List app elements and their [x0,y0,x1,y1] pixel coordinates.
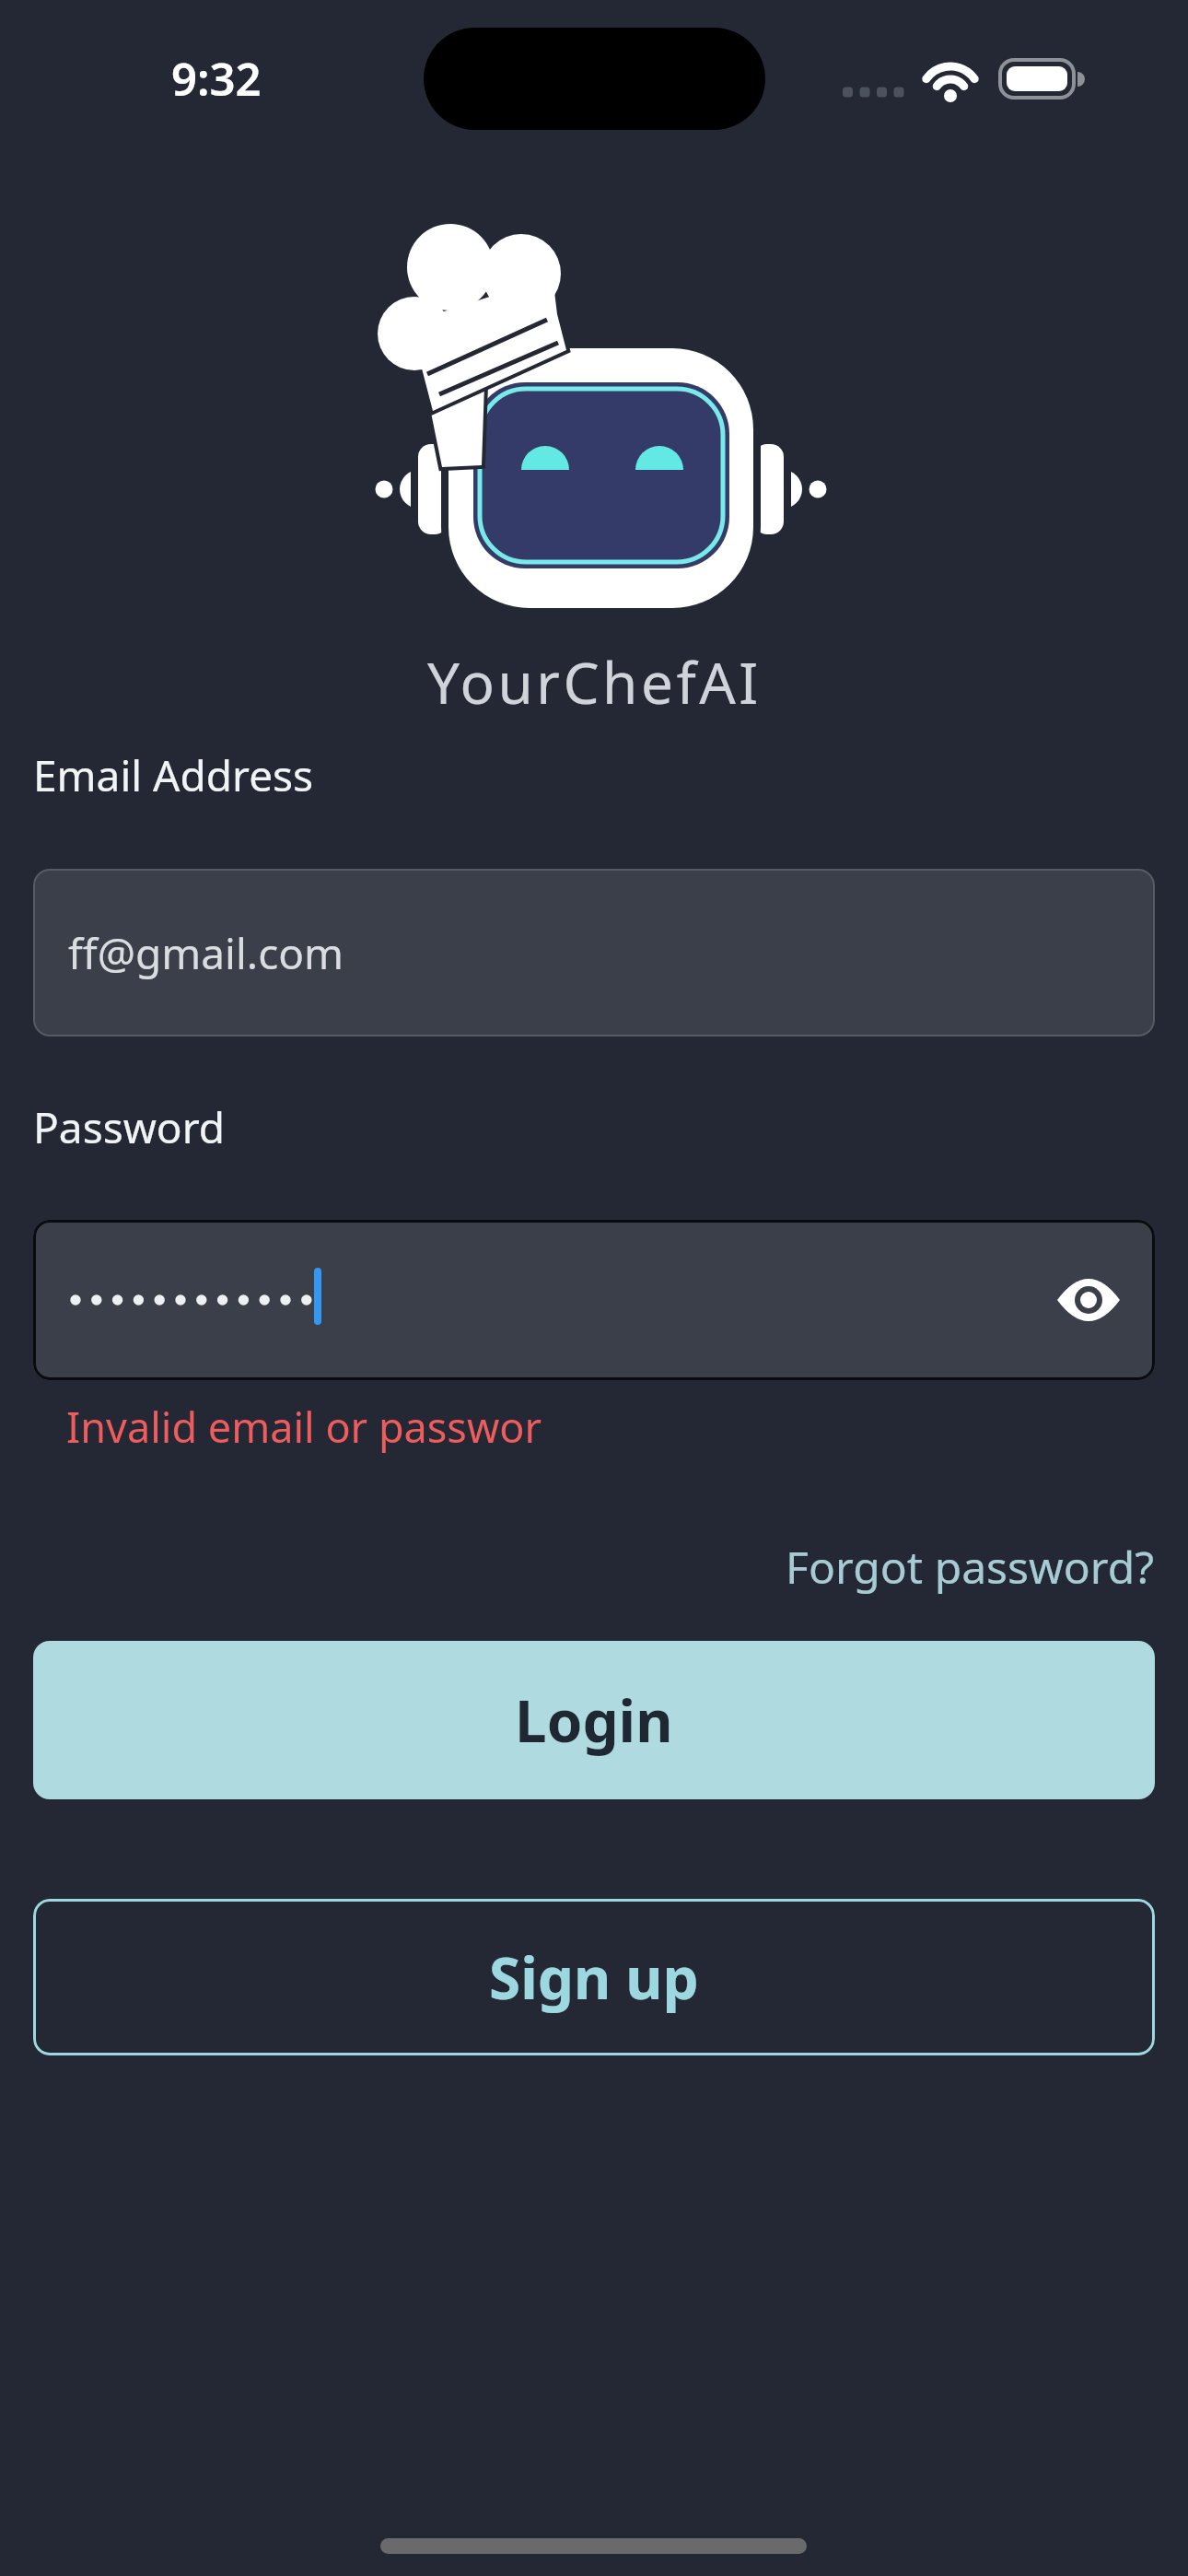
button[interactable] [33,1220,1155,1380]
button[interactable]: Sign up [33,1899,1155,2055]
staticText: Password [33,1098,226,1156]
staticText: Email Address [33,746,314,804]
button[interactable]: Forgot password? [786,1537,1155,1597]
button[interactable]: ff@gmail.com [33,869,1155,1036]
staticText: Login [515,1681,673,1759]
staticText: Sign up [489,1938,699,2016]
staticText: 9:32 [171,48,262,110]
staticText: Invalid email or passwor [66,1399,542,1455]
button[interactable]: Login [33,1641,1155,1799]
staticText: ff@gmail.com [68,924,344,982]
staticText: YourChefAI [427,643,762,720]
